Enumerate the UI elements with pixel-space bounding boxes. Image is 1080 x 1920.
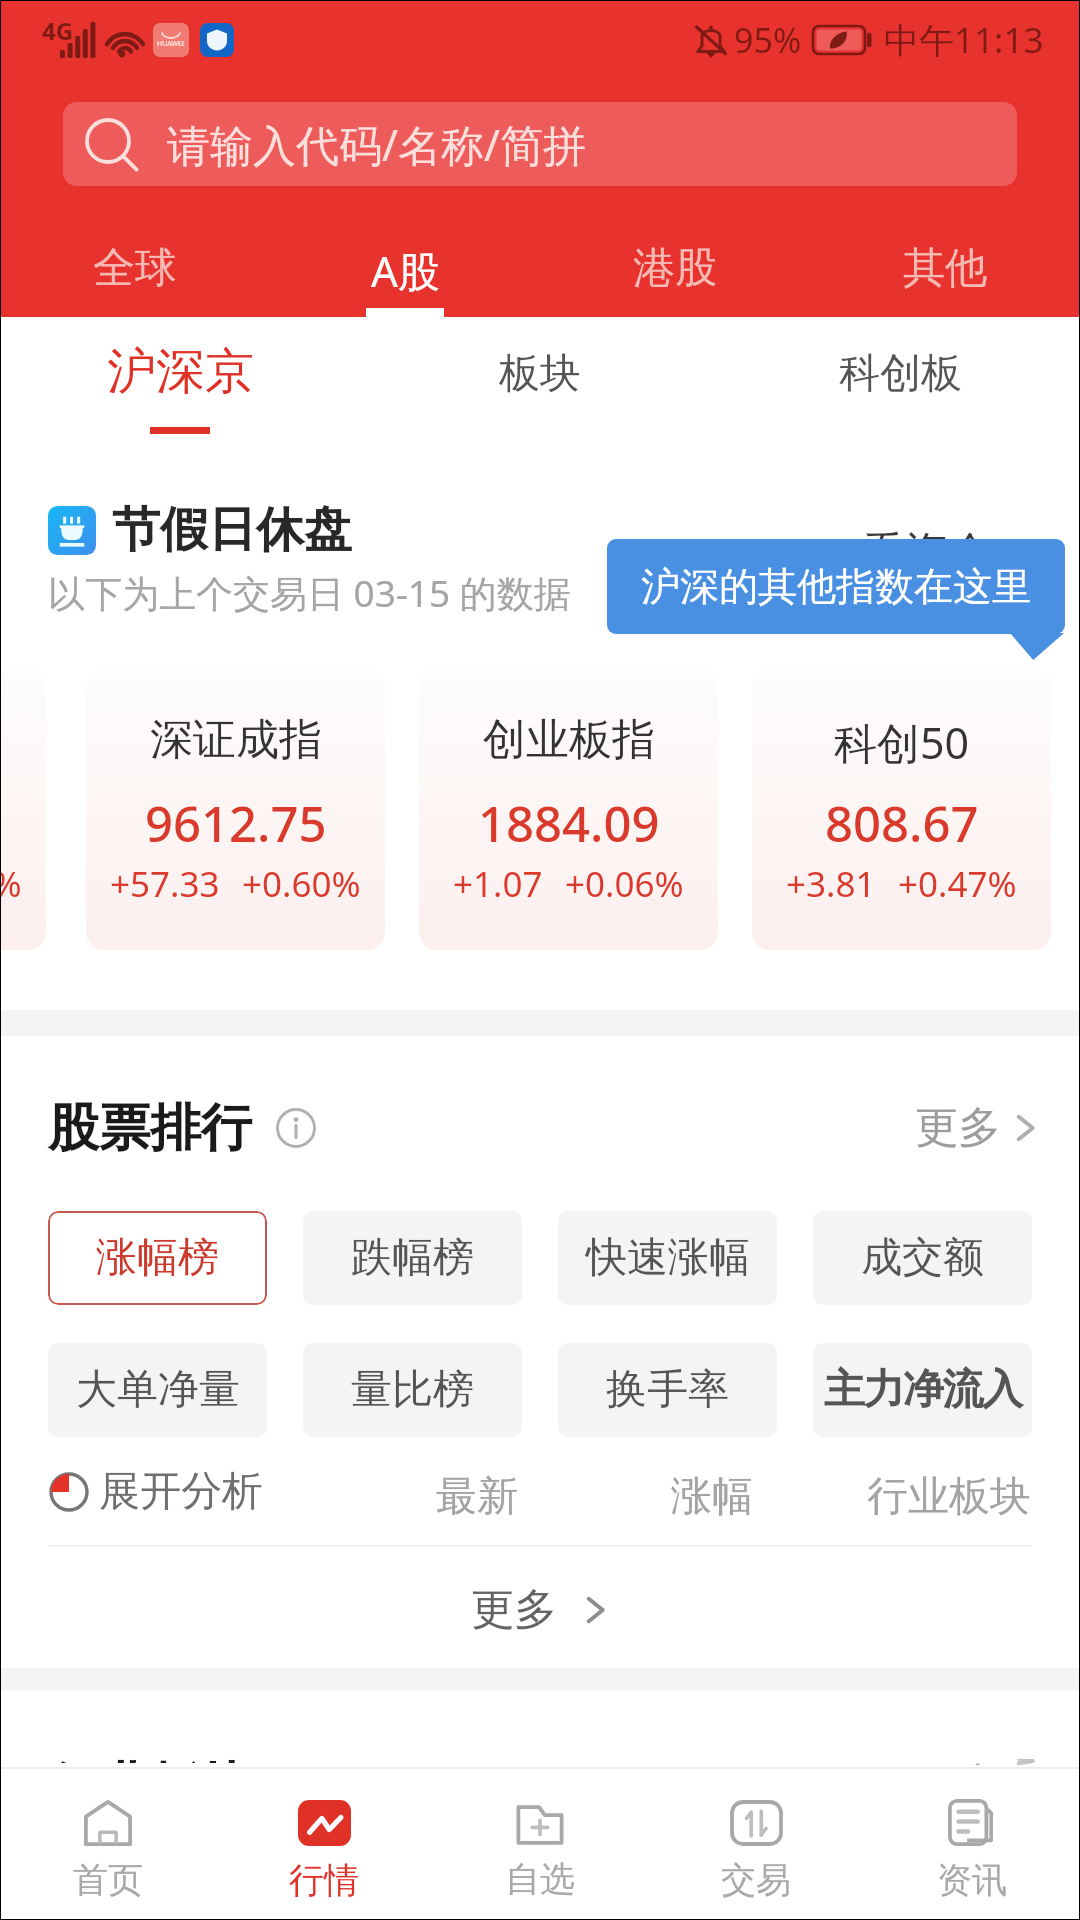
staticText: +0.60% <box>242 860 361 908</box>
button[interactable]: 更多 <box>915 1096 1039 1160</box>
button[interactable]: 换手率 <box>558 1343 777 1437</box>
staticText: 港股 <box>633 242 717 295</box>
button[interactable]: 说明 <box>274 1106 318 1150</box>
staticText: 行情 <box>289 1858 359 1902</box>
staticText: 涨幅 <box>671 1471 753 1523</box>
button[interactable]: 请输入代码/名称/简拼 <box>63 102 1017 186</box>
button[interactable]: 全球 <box>0 225 270 317</box>
staticText: 成交额 <box>861 1232 984 1284</box>
staticText: 跌幅榜 <box>351 1232 474 1284</box>
button[interactable]: 跌幅榜 <box>303 1211 522 1305</box>
button[interactable]: 首页 <box>0 1769 216 1920</box>
staticText: 沪深的其他指数在这里 <box>641 562 1031 611</box>
button[interactable]: 快速涨幅 <box>558 1211 777 1305</box>
button[interactable]: 成交额 <box>813 1211 1032 1305</box>
button[interactable]: 科创板 <box>720 317 1080 447</box>
staticText: +1.07 <box>453 860 543 908</box>
staticText: 看资金 <box>861 526 993 581</box>
staticText: +3.81 <box>786 860 876 908</box>
button[interactable]: 更多 <box>0 1575 1080 1645</box>
button[interactable]: 展开分析 <box>48 1460 263 1524</box>
staticText: 深证成指 <box>150 713 322 767</box>
button[interactable]: 量比榜 <box>303 1343 522 1437</box>
staticText: 创业板指 <box>483 713 655 767</box>
staticText: +57.33 <box>110 860 220 908</box>
staticText: 最新 <box>436 1471 518 1523</box>
staticText: 科创50 <box>834 713 970 772</box>
staticText: 资讯 <box>937 1858 1007 1902</box>
staticText: 主力净流入 <box>824 1364 1022 1416</box>
button[interactable]: 涨幅榜 <box>48 1211 267 1305</box>
button[interactable]: 科创50 <box>752 668 1051 950</box>
staticText: 换手率 <box>606 1364 729 1416</box>
button[interactable]: 交易 <box>648 1769 864 1920</box>
staticText: 1884.09 <box>478 790 660 857</box>
button[interactable]: 板块 <box>360 317 720 447</box>
staticText: 大单净量 <box>76 1364 240 1416</box>
button[interactable]: 创业板指 <box>419 668 718 950</box>
staticText: HUAWEI <box>157 39 185 49</box>
button[interactable]: 港股 <box>540 225 810 317</box>
staticText: 808.67 <box>825 790 979 857</box>
button[interactable]: 行情 <box>216 1769 432 1920</box>
button[interactable]: 上证指数 <box>0 668 46 950</box>
staticText: 科创板 <box>839 348 962 400</box>
staticText: +0.47% <box>898 860 1017 908</box>
button[interactable]: 深证成指 <box>86 668 385 950</box>
button[interactable]: 大单净量 <box>48 1343 267 1437</box>
staticText: 量比榜 <box>351 1364 474 1416</box>
staticText: 请输入代码/名称/简拼 <box>167 115 586 174</box>
button[interactable]: 主力净流入 <box>813 1343 1032 1437</box>
staticText: 涨幅榜 <box>96 1232 219 1284</box>
staticText: 95% <box>734 17 802 63</box>
staticText: 9612.75 <box>145 790 327 857</box>
staticText: 展开分析 <box>99 1466 263 1518</box>
staticText: 更多 <box>915 1759 1001 1765</box>
staticText: 快速涨幅 <box>586 1232 750 1284</box>
staticText: 以下为上个交易日 03-15 的数据 <box>48 567 571 618</box>
staticText: 自选 <box>505 1857 575 1901</box>
staticText: 板块 <box>499 348 581 400</box>
button[interactable]: 资讯 <box>864 1769 1080 1920</box>
staticText: 中午11:13 <box>884 16 1044 64</box>
staticText: +0.06% <box>565 860 684 908</box>
staticText: 股票排行 <box>48 1096 252 1160</box>
staticText: 全球 <box>93 242 177 295</box>
staticText: 行业板块 <box>48 1759 252 1763</box>
staticText: 首页 <box>73 1858 143 1902</box>
staticText: 沪深京 <box>107 341 254 403</box>
staticText: 更多 <box>915 1101 1001 1155</box>
staticText: 其他 <box>903 242 987 295</box>
staticText: 节假日休盘 <box>112 500 352 560</box>
staticText: +0.42% <box>0 860 22 908</box>
button[interactable]: A股 <box>270 225 540 317</box>
staticText: 交易 <box>721 1858 791 1902</box>
staticText: A股 <box>371 242 440 299</box>
staticText: 4G <box>42 14 74 47</box>
button[interactable]: 沪深京 <box>0 317 360 447</box>
staticText: 更多 <box>471 1583 557 1637</box>
button[interactable]: 自选 <box>432 1769 648 1920</box>
staticText: 行业板块 <box>867 1471 1031 1523</box>
button[interactable]: 其他 <box>810 225 1080 317</box>
button[interactable]: 看资金 <box>861 523 1033 583</box>
